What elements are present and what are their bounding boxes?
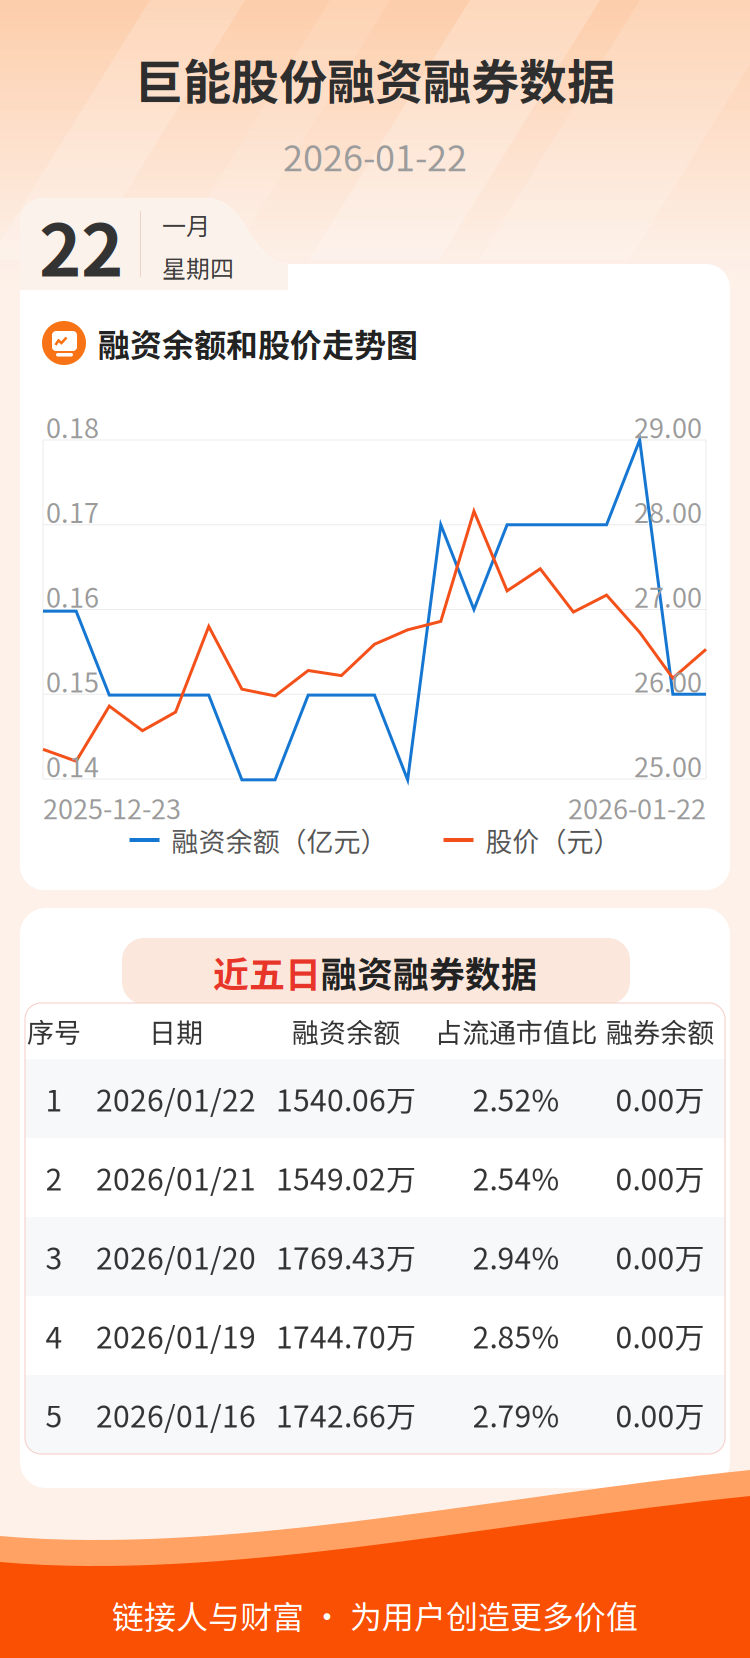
staticText: 2.54%	[472, 1156, 559, 1199]
staticText: 2.79%	[472, 1393, 559, 1436]
staticText: 2026/01/16	[96, 1393, 256, 1436]
staticText: 0.00万	[615, 1393, 704, 1436]
staticText: 26.00	[634, 661, 702, 700]
staticText: 一月	[162, 207, 210, 242]
staticText: 2025-12-23	[43, 788, 181, 827]
staticText: 1742.66万	[276, 1393, 416, 1436]
staticText: 28.00	[634, 492, 702, 531]
staticText: 2.85%	[472, 1314, 559, 1357]
staticText: 星期四	[162, 250, 234, 285]
staticText: 2026/01/20	[96, 1235, 256, 1278]
staticText: 27.00	[634, 576, 702, 616]
staticText: 日期	[149, 1011, 203, 1051]
staticText: 25.00	[634, 746, 702, 785]
staticText: 1540.06万	[276, 1077, 416, 1120]
staticText: 融券余额	[606, 1011, 714, 1051]
staticText: 0.17	[46, 492, 99, 531]
staticText: 2	[45, 1156, 62, 1199]
staticText: 链接人与财富 · 为用户创造更多价值	[112, 1592, 638, 1638]
staticText: 1549.02万	[276, 1156, 416, 1199]
staticText: 0.14	[46, 746, 99, 785]
staticText: 2026-01-22	[568, 788, 706, 827]
staticText: 2.52%	[472, 1077, 559, 1120]
staticText: 22	[39, 193, 123, 297]
staticText: 近五日	[213, 946, 321, 998]
staticText: 0.00万	[615, 1156, 704, 1199]
staticText: 2026-01-22	[283, 129, 467, 182]
staticText: 5	[45, 1393, 62, 1436]
staticText: 1744.70万	[276, 1314, 416, 1357]
staticText: 0.15	[46, 661, 99, 700]
staticText: 0.00万	[615, 1314, 704, 1357]
staticText: 序号	[27, 1011, 81, 1051]
staticText: 0.16	[46, 576, 99, 616]
staticText: 4	[45, 1314, 62, 1357]
staticText: 0.00万	[615, 1235, 704, 1278]
staticText: 3	[45, 1235, 62, 1278]
staticText: 0.18	[46, 407, 99, 446]
staticText: 融资余额	[292, 1011, 400, 1051]
staticText: 1769.43万	[276, 1235, 416, 1278]
staticText: 0.00万	[615, 1077, 704, 1120]
staticText: 融资融券数据	[321, 946, 537, 998]
staticText: 1	[45, 1077, 62, 1120]
staticText: 股价（元）	[485, 820, 620, 860]
staticText: 2026/01/22	[96, 1077, 256, 1120]
staticText: 2.94%	[472, 1235, 559, 1278]
staticText: 巨能股份融资融券数据	[135, 44, 615, 113]
staticText: 2026/01/19	[96, 1314, 256, 1357]
staticText: 融资余额和股价走势图	[98, 320, 418, 366]
staticText: 占流通市值比	[435, 1011, 597, 1051]
staticText: 融资余额（亿元）	[171, 820, 387, 860]
staticText: 29.00	[634, 407, 702, 446]
staticText: 2026/01/21	[96, 1156, 256, 1199]
